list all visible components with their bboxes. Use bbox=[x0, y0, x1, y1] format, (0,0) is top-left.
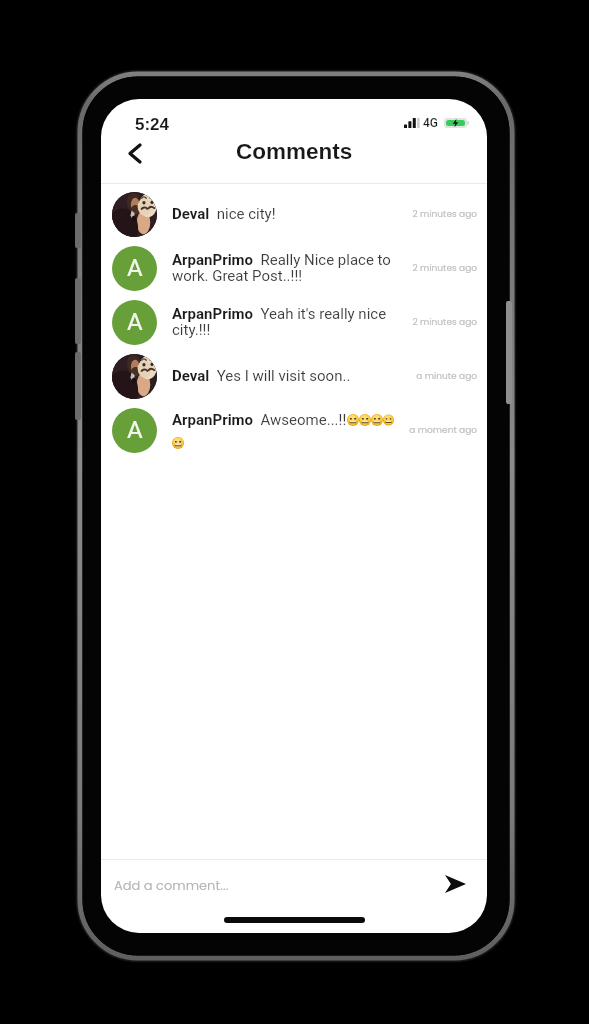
button[interactable]: Send bbox=[438, 868, 472, 902]
staticText: Comments bbox=[236, 139, 353, 164]
staticText: 2 minutes ago bbox=[394, 262, 477, 275]
button[interactable]: A bbox=[101, 241, 487, 295]
staticText: a moment ago bbox=[394, 424, 477, 437]
staticText: Deval nice city! bbox=[172, 205, 276, 223]
button[interactable]: A bbox=[101, 295, 487, 349]
staticText: A bbox=[127, 416, 143, 444]
button[interactable]: A bbox=[101, 403, 487, 457]
staticText: 5:24 bbox=[135, 115, 170, 134]
staticText: ArpanPrimo Yeah it's really nice city.!!… bbox=[172, 305, 394, 339]
button[interactable]: Deval Yes I will visit soon.. bbox=[101, 349, 487, 403]
staticText: Deval Yes I will visit soon.. bbox=[172, 367, 351, 385]
staticText: ArpanPrimo Awseome...!! bbox=[172, 411, 347, 429]
staticText: Add a comment... bbox=[114, 876, 229, 894]
staticText: A bbox=[127, 308, 143, 336]
button[interactable]: Deval nice city! bbox=[101, 187, 487, 241]
staticText: ArpanPrimo Really Nice place to work. Gr… bbox=[172, 251, 394, 285]
staticText: A bbox=[127, 254, 143, 282]
staticText: 4G bbox=[423, 116, 438, 130]
staticText: 2 minutes ago bbox=[394, 208, 477, 221]
staticText: a minute ago bbox=[394, 370, 477, 383]
staticText: 2 minutes ago bbox=[394, 316, 477, 329]
button[interactable]: Back bbox=[118, 136, 152, 170]
